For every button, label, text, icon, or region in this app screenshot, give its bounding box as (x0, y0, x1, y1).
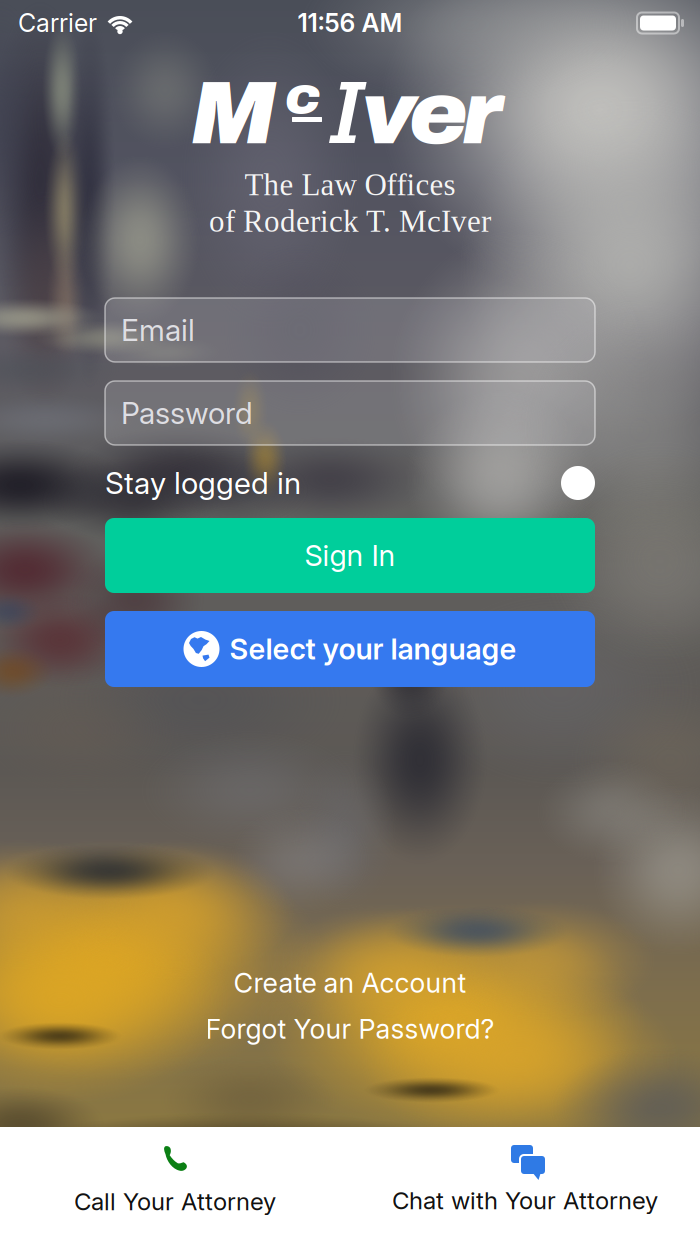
staticText: c (285, 66, 321, 125)
staticText: Stay logged in (105, 465, 301, 501)
staticText: Email (121, 312, 195, 348)
staticText: Create an Account (233, 967, 466, 999)
staticText: 11:56 AM (297, 8, 402, 38)
staticText: M (190, 65, 277, 162)
staticText: Forgot Your Password? (205, 1013, 494, 1045)
staticText: Sign In (304, 538, 395, 573)
button[interactable]: Forgot Your Password? (0, 1014, 700, 1044)
staticText: Chat with Your Attorney (392, 1186, 658, 1215)
button[interactable]: Chat with Your Attorney (350, 1127, 700, 1244)
button[interactable]: Sign In (105, 518, 595, 593)
staticText: Carrier (18, 8, 97, 38)
staticText: Select your language (229, 631, 516, 667)
staticText: of Roderick T. McIver (209, 204, 491, 238)
staticText: Password (121, 395, 253, 431)
staticText: ver (361, 65, 502, 162)
staticText: Call Your Attorney (74, 1187, 276, 1216)
button[interactable]: Call Your Attorney (0, 1127, 350, 1244)
button[interactable]: Create an Account (0, 968, 700, 998)
button[interactable]: Stay logged in (561, 466, 595, 500)
button[interactable]: Select your language (105, 611, 595, 687)
staticText: The Law Offices (244, 168, 455, 202)
